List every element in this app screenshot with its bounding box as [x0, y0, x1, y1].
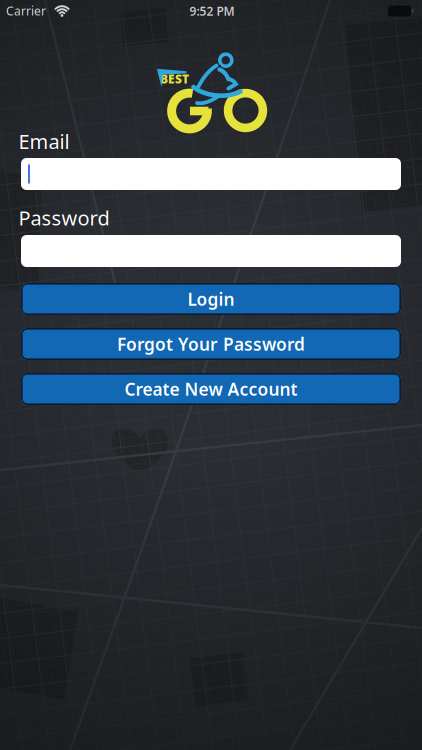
- staticText: Forgot Your Password: [117, 332, 305, 355]
- staticText: BEST: [160, 71, 189, 87]
- button[interactable]: Forgot Your Password: [21, 328, 401, 360]
- button[interactable]: Create New Account: [21, 373, 401, 405]
- staticText: 9:52 PM: [189, 3, 234, 19]
- button[interactable]: Email: [21, 158, 401, 190]
- staticText: Carrier: [6, 3, 46, 19]
- staticText: Email: [18, 128, 69, 155]
- button[interactable]: Password: [21, 235, 401, 267]
- staticText: Login: [187, 287, 234, 310]
- button[interactable]: Login: [21, 283, 401, 315]
- staticText: Password: [18, 204, 109, 231]
- staticText: Create New Account: [124, 377, 297, 400]
